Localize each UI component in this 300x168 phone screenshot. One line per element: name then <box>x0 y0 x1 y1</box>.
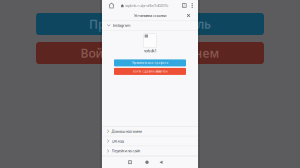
button[interactable]: More <box>191 0 193 11</box>
staticText: 2 <box>129 160 131 164</box>
staticText: nofsdk1 <box>143 48 156 53</box>
staticText: Перейти на сайт <box>111 148 140 153</box>
staticText: Домашняя мини <box>111 128 141 134</box>
button[interactable]: Instagram <box>102 21 198 30</box>
button[interactable]: Переместить мои профили <box>114 59 186 66</box>
button[interactable]: Home <box>140 157 154 168</box>
staticText: taplink.ru/profile/1d0201k <box>125 3 168 8</box>
button[interactable]: Home <box>109 0 114 11</box>
staticText: Переместить мои профили <box>131 61 168 65</box>
staticText: Установка ссылки <box>134 13 166 18</box>
button[interactable]: Tabs <box>123 157 137 168</box>
staticText: Войти с другим аккаунтом <box>132 70 167 73</box>
button[interactable]: Войти с другим аккаунтом <box>114 68 186 75</box>
staticText: QR-код <box>111 138 123 144</box>
staticText: Instagram <box>113 23 131 28</box>
button[interactable]: Привязать профиль <box>36 13 264 35</box>
staticText: 2 <box>183 4 185 7</box>
staticText: Привязать профиль <box>89 16 211 32</box>
button[interactable]: QR-код <box>102 136 198 146</box>
button[interactable]: Войти другим именем <box>36 42 264 64</box>
button[interactable]: Tabs <box>182 0 186 11</box>
button[interactable]: Close <box>184 11 193 20</box>
button[interactable]: Перейти на сайт <box>102 146 198 156</box>
button[interactable]: Домашняя мини <box>102 127 198 136</box>
staticText: Войти другим именем <box>80 45 219 61</box>
button[interactable]: Back <box>154 157 168 168</box>
